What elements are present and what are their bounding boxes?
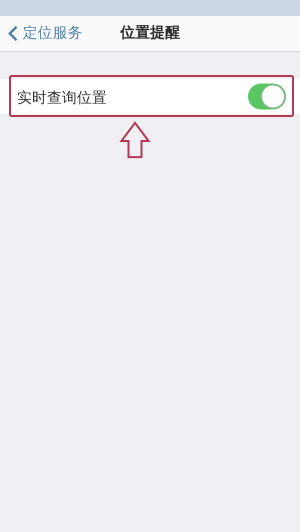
staticText: 定位服务 xyxy=(23,23,83,41)
staticText: 实时查询位置 xyxy=(17,88,107,106)
staticText: 位置提醒 xyxy=(120,23,180,41)
button[interactable]: 定位服务 xyxy=(0,16,91,51)
button[interactable]: 实时查询位置 xyxy=(0,79,300,114)
